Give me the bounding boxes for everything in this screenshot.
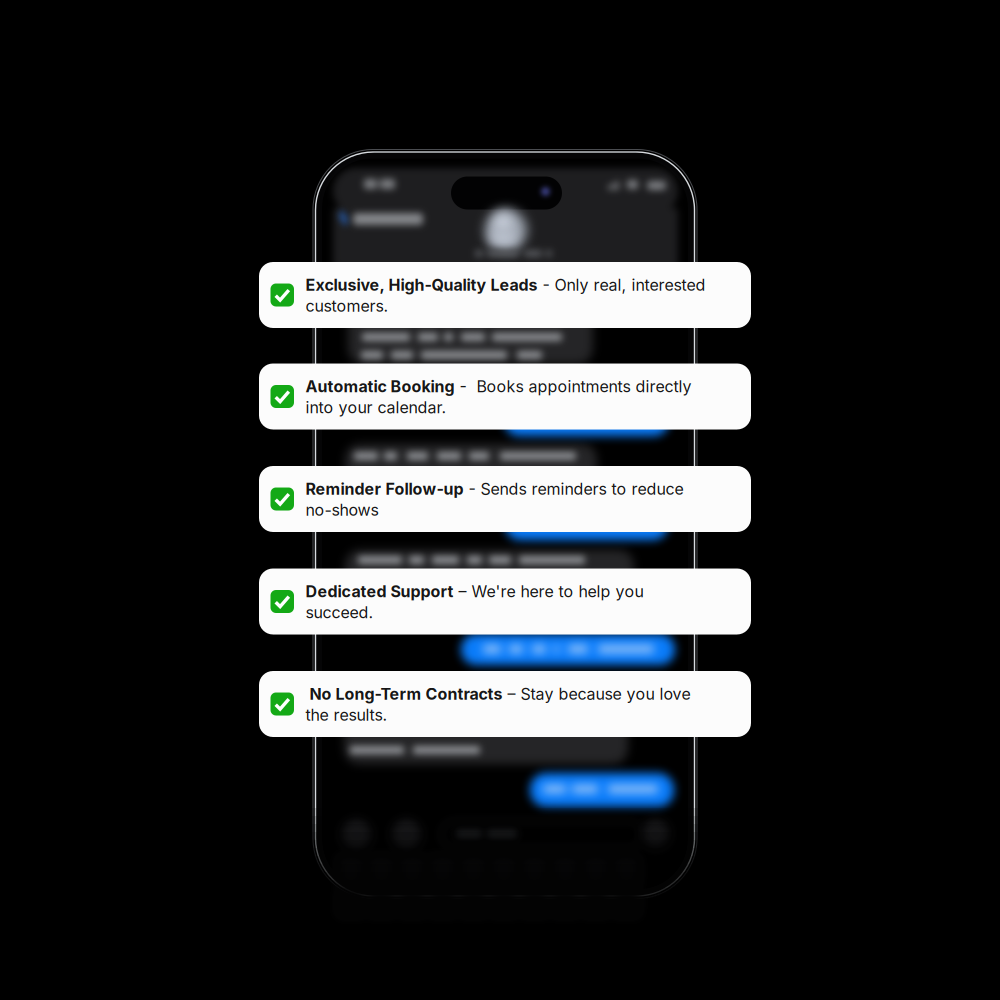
staticText: Dedicated Support – We're here to help y… (305, 582, 643, 622)
button[interactable]: Automatic Booking - Books appointments d… (259, 363, 751, 429)
button[interactable]: No Long-Term Contracts – Stay because yo… (259, 671, 751, 737)
staticText: Automatic Booking - Books appointments d… (305, 377, 691, 417)
staticText: Reminder Follow-up - Sends reminders to … (305, 479, 683, 519)
staticText: No Long-Term Contracts – Stay because yo… (305, 684, 690, 724)
button[interactable]: Dedicated Support – We're here to help y… (259, 568, 751, 634)
button[interactable]: Reminder Follow-up - Sends reminders to … (259, 466, 751, 532)
button[interactable]: Exclusive, High-Quality Leads - Only rea… (259, 262, 751, 328)
staticText: Exclusive, High-Quality Leads - Only rea… (305, 275, 705, 315)
